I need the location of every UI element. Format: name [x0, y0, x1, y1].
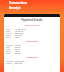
- button[interactable]: Burger: [6, 44, 58, 46]
- staticText: Txn ID: [6, 32, 12, 34]
- button[interactable]: Phone: [6, 62, 58, 64]
- staticText: 120.00: [15, 44, 21, 46]
- button[interactable]: Fries: [6, 46, 58, 48]
- staticText: Coke: [6, 48, 11, 50]
- button[interactable]: Time: [6, 30, 58, 32]
- staticText: Payment Details: [6, 18, 58, 22]
- staticText: 900 000: [15, 62, 22, 64]
- staticText: Total: [6, 52, 11, 54]
- staticText: Taxes: [6, 50, 11, 52]
- staticText: Fries: [6, 46, 11, 48]
- button[interactable]: Support: [6, 60, 58, 62]
- staticText: Mode: [6, 34, 12, 36]
- staticText: Bank: [6, 36, 11, 38]
- button[interactable]: Mode: [6, 34, 58, 36]
- staticText: UPI pay: [15, 34, 22, 36]
- button[interactable]: Taxes: [6, 50, 58, 52]
- staticText: 45.50: [15, 46, 20, 48]
- staticText: 30.00: [15, 48, 20, 50]
- staticText: Thank you!: [6, 56, 58, 59]
- button[interactable]: Txn ID: [6, 32, 58, 34]
- staticText: Burger: [6, 44, 13, 46]
- staticText: Item Details: [6, 40, 58, 43]
- staticText: Time: [6, 30, 11, 32]
- button[interactable]: Total: [6, 52, 58, 54]
- button[interactable]: Coke: [6, 48, 58, 50]
- staticText: Phone: [6, 62, 12, 64]
- button[interactable]: Bank: [6, 36, 58, 38]
- staticText: 88129300: [15, 32, 24, 34]
- button[interactable]: Date: [6, 28, 58, 30]
- staticText: Receipt: [9, 6, 21, 10]
- staticText: Support: [6, 60, 14, 62]
- staticText: 18.00: [15, 50, 20, 52]
- staticText: HDFC: [15, 36, 20, 38]
- staticText: 213.50: [15, 52, 21, 54]
- staticText: 10:24 AM: [15, 30, 24, 32]
- staticText: Date: [6, 28, 11, 30]
- staticText: Order Summary: [6, 24, 58, 27]
- staticText: help@x.io: [15, 60, 24, 62]
- staticText: Transaction: [9, 1, 28, 5]
- staticText: 12 Apr 2024: [15, 28, 26, 30]
